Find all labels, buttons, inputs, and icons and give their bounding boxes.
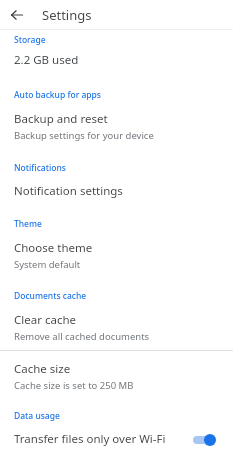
staticText: Notifications bbox=[14, 162, 66, 174]
staticText: Cache size is set to 250 MB bbox=[14, 379, 134, 392]
staticText: Documents cache bbox=[14, 290, 87, 302]
staticText: Backup settings for your device bbox=[14, 129, 154, 142]
staticText: Cache size bbox=[14, 361, 71, 377]
button[interactable]: Backup and reset bbox=[0, 101, 233, 144]
button[interactable]: Notification settings bbox=[0, 174, 233, 201]
staticText: Choose theme bbox=[14, 240, 93, 256]
staticText: Auto backup for apps bbox=[14, 89, 101, 101]
staticText: Theme bbox=[14, 218, 42, 230]
staticText: Settings bbox=[42, 6, 92, 24]
staticText: System default bbox=[14, 258, 81, 271]
button[interactable]: Clear cache bbox=[0, 302, 233, 345]
button[interactable]: Choose theme bbox=[0, 230, 233, 273]
staticText: Notification settings bbox=[14, 183, 123, 199]
button[interactable]: Transfer files only over Wi-Fi toggle bbox=[189, 431, 219, 448]
staticText: 2.2 GB used bbox=[14, 52, 79, 68]
staticText: Remove all cached documents bbox=[14, 330, 150, 343]
button[interactable]: Transfer files only over Wi-Fi bbox=[0, 422, 233, 450]
button[interactable]: 2.2 GB used bbox=[0, 46, 233, 70]
staticText: Clear cache bbox=[14, 312, 76, 328]
staticText: Data usage bbox=[14, 410, 60, 422]
staticText: Storage bbox=[14, 34, 46, 46]
button[interactable]: Cache size bbox=[0, 351, 233, 394]
staticText: Transfer files only over Wi-Fi bbox=[14, 431, 166, 447]
button[interactable]: Back bbox=[4, 2, 30, 28]
staticText: Backup and reset bbox=[14, 111, 108, 127]
